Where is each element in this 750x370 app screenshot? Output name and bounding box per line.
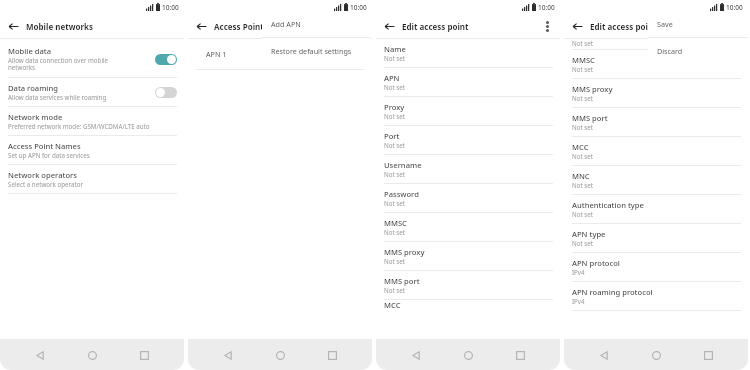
button[interactable]: Recent apps: [508, 343, 532, 367]
staticText: Network operators: [8, 170, 77, 180]
staticText: Not set: [572, 181, 593, 189]
button[interactable]: More options: [539, 18, 555, 34]
staticText: Not set: [572, 94, 593, 102]
button[interactable]: APN roaming protocol: [564, 282, 748, 311]
staticText: Not set: [384, 141, 405, 149]
staticText: Not set: [384, 170, 405, 178]
staticText: Not set: [384, 199, 405, 207]
staticText: Edit access point: [590, 21, 657, 32]
button[interactable]: Home: [644, 343, 668, 367]
button[interactable]: APN protocol: [564, 253, 748, 282]
button[interactable]: Navigate up: [569, 18, 585, 34]
button[interactable]: On: [155, 54, 177, 65]
button[interactable]: Home: [80, 343, 104, 367]
button[interactable]: Back: [28, 343, 52, 367]
staticText: Add APN: [271, 19, 301, 29]
button[interactable]: Recent apps: [320, 343, 344, 367]
staticText: MMSC: [384, 218, 407, 228]
staticText: MNC: [572, 171, 590, 181]
staticText: IPv4: [572, 297, 585, 305]
button[interactable]: Access Point Names: [0, 136, 184, 165]
staticText: Not set: [572, 123, 593, 131]
staticText: 10:00: [162, 3, 179, 12]
staticText: APN roaming protocol: [572, 287, 653, 297]
button[interactable]: Discard: [648, 38, 748, 64]
button[interactable]: Username: [376, 155, 560, 184]
button[interactable]: Network mode: [0, 107, 184, 136]
staticText: Not set: [572, 210, 593, 218]
staticText: Not set: [384, 286, 405, 294]
button[interactable]: Data roaming: [0, 78, 184, 107]
staticText: APN: [384, 73, 400, 83]
button[interactable]: MMS proxy: [376, 242, 560, 271]
staticText: Restore default settings: [271, 46, 352, 56]
button[interactable]: Back: [592, 343, 616, 367]
staticText: APN 1: [206, 49, 227, 59]
staticText: Password: [384, 189, 419, 199]
staticText: MMS port: [384, 276, 420, 286]
button[interactable]: Navigate up: [381, 18, 397, 34]
staticText: 10:00: [350, 3, 367, 12]
staticText: MCC: [572, 142, 589, 152]
staticText: Name: [384, 44, 406, 54]
staticText: MMS proxy: [384, 247, 425, 257]
button[interactable]: Mobile data: [0, 41, 184, 78]
staticText: Not set: [384, 112, 405, 120]
staticText: Set up APN for data services: [8, 151, 90, 159]
button[interactable]: MMS proxy: [564, 79, 748, 108]
staticText: Preferred network mode: GSM/WCDMA/LTE au…: [8, 122, 150, 130]
button[interactable]: MMSC: [376, 213, 560, 242]
button[interactable]: Network operators: [0, 165, 184, 194]
staticText: Mobile networks: [26, 21, 94, 32]
staticText: Proxy: [384, 102, 405, 112]
button[interactable]: Home: [456, 343, 480, 367]
button[interactable]: Save: [648, 11, 748, 37]
staticText: MMS port: [572, 113, 608, 123]
staticText: Access Point Names: [8, 141, 81, 151]
staticText: Access Point Names: [214, 21, 294, 32]
staticText: Not set: [572, 239, 593, 247]
button[interactable]: Add APN: [262, 11, 370, 37]
staticText: Select a network operator: [8, 180, 83, 188]
button[interactable]: MCC: [564, 137, 748, 166]
staticText: MMSC: [572, 55, 595, 65]
button[interactable]: Recent apps: [132, 343, 156, 367]
button[interactable]: APN: [376, 68, 560, 97]
button[interactable]: Off: [155, 87, 177, 98]
staticText: Data roaming: [8, 83, 58, 93]
button[interactable]: APN 1: [188, 39, 372, 69]
button[interactable]: APN type: [564, 224, 748, 253]
button[interactable]: Navigate up: [5, 18, 21, 34]
staticText: Save: [657, 19, 673, 29]
staticText: MCC: [384, 300, 401, 309]
staticText: Authentication type: [572, 200, 644, 210]
button[interactable]: MNC: [564, 166, 748, 195]
staticText: MMS proxy: [572, 84, 613, 94]
button[interactable]: Authentication type: [564, 195, 748, 224]
button[interactable]: Back: [404, 343, 428, 367]
button[interactable]: Proxy: [376, 97, 560, 126]
button[interactable]: Recent apps: [696, 343, 720, 367]
button[interactable]: Restore default settings: [262, 38, 370, 64]
button[interactable]: Navigate up: [193, 18, 209, 34]
button[interactable]: Name: [376, 39, 560, 68]
button[interactable]: Home: [268, 343, 292, 367]
button[interactable]: Back: [216, 343, 240, 367]
button[interactable]: Port: [376, 126, 560, 155]
staticText: IPv4: [572, 268, 585, 276]
staticText: 10:00: [538, 3, 555, 12]
staticText: Not set: [572, 152, 593, 160]
staticText: Not set: [572, 39, 593, 47]
button[interactable]: MMSC: [564, 50, 748, 79]
staticText: Edit access point: [402, 21, 469, 32]
staticText: Network mode: [8, 112, 63, 122]
staticText: Discard: [657, 46, 683, 56]
staticText: Not set: [572, 65, 593, 73]
staticText: Not set: [384, 54, 405, 62]
staticText: Mobile data: [8, 46, 52, 56]
staticText: Not set: [384, 83, 405, 91]
button[interactable]: MMS port: [376, 271, 560, 300]
button[interactable]: MMS port: [564, 108, 748, 137]
button[interactable]: Password: [376, 184, 560, 213]
staticText: Port: [384, 131, 400, 141]
